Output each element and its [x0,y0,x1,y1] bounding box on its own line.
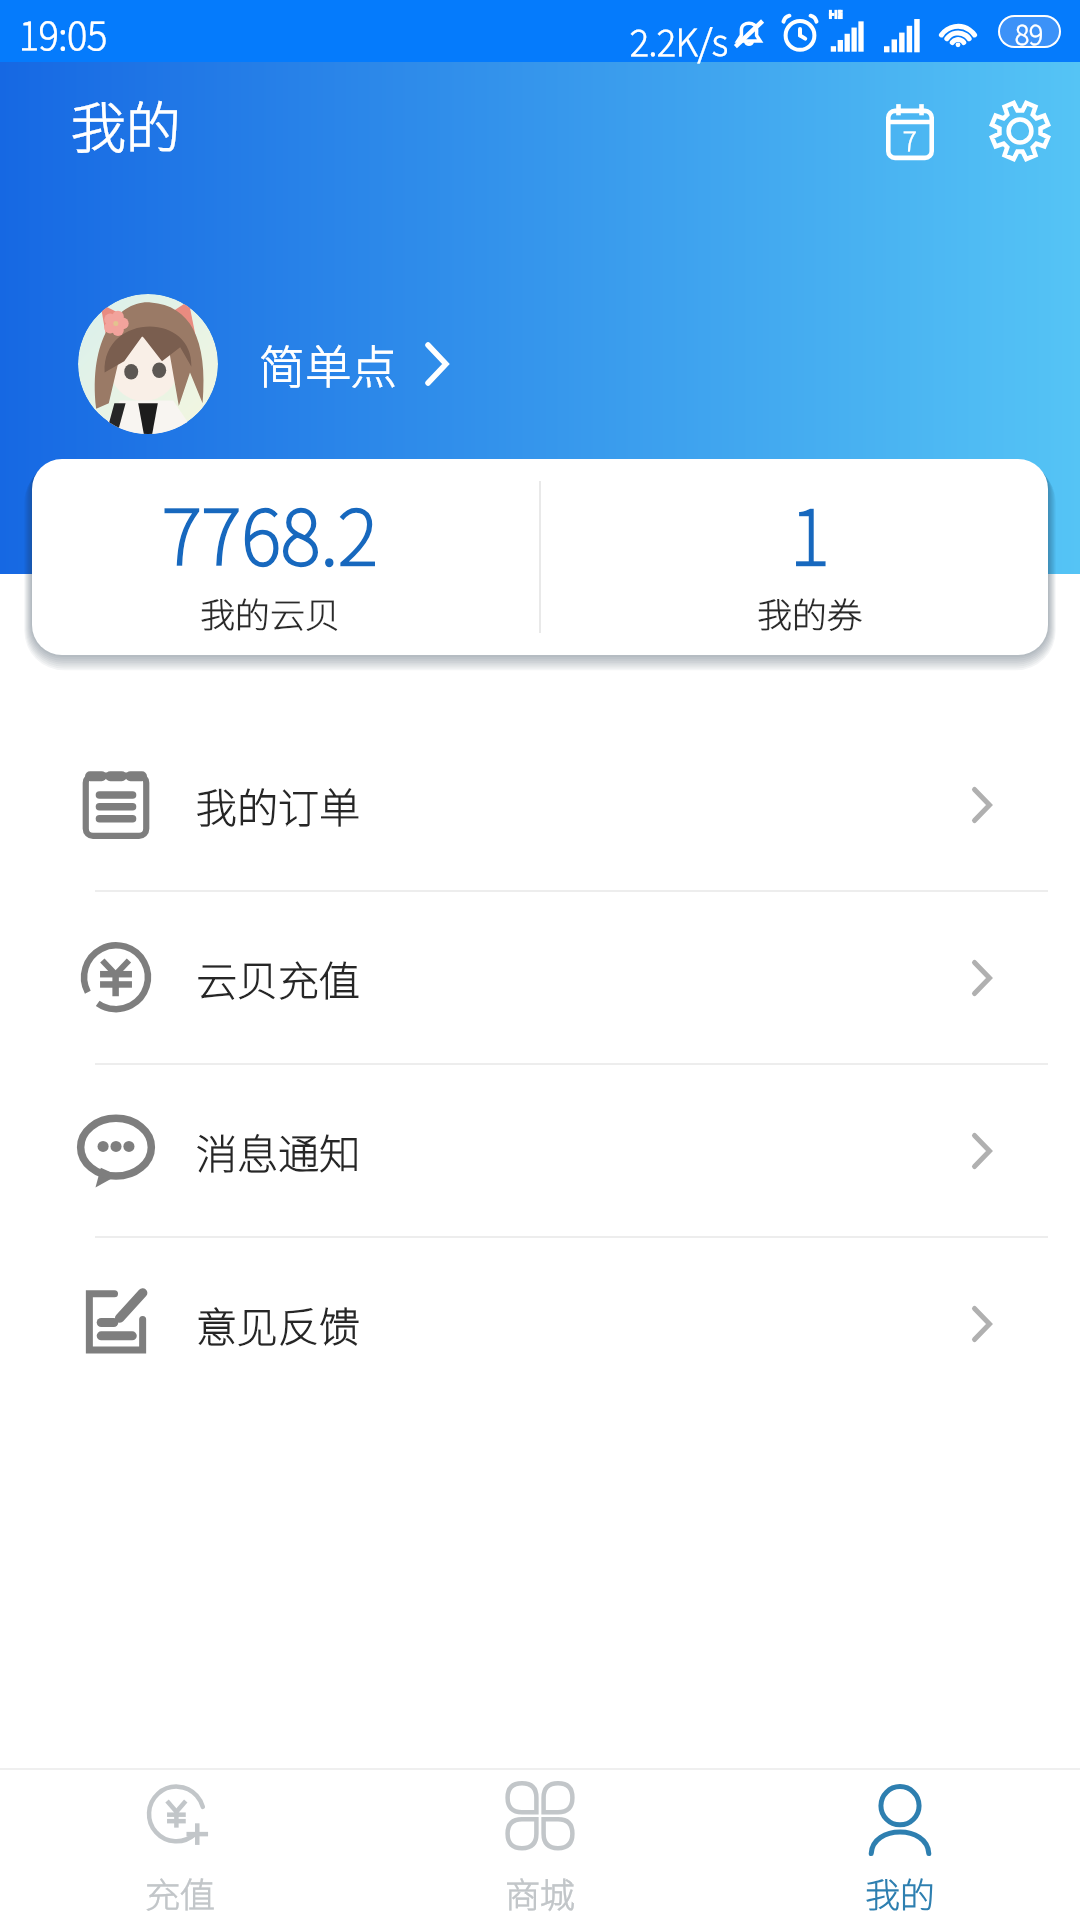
button[interactable]: 消息通知 [0,1065,1080,1236]
button[interactable]: 云贝充值 [0,892,1080,1063]
staticText: 7768.2 [162,477,378,587]
button[interactable]: Calendar [855,76,965,186]
staticText: 89 [1015,15,1044,47]
button[interactable]: 我的订单 [0,719,1080,890]
staticText: 我的 [71,84,182,164]
staticText: 消息通知 [196,1121,360,1180]
button[interactable]: 意见反馈 [0,1238,1080,1409]
button[interactable]: 我的 [720,1770,1080,1920]
button[interactable]: 简单点 [78,294,449,434]
button[interactable]: 商城 [360,1770,720,1920]
staticText: 意见反馈 [196,1294,360,1353]
staticText: 19:05 [19,6,107,61]
button[interactable]: 充值 [0,1770,360,1920]
button[interactable]: Settings [965,76,1075,186]
staticText: 我的 [865,1867,936,1918]
button[interactable]: 7768.2 [32,459,540,655]
staticText: 2.2K/s [630,14,728,66]
staticText: 我的券 [757,587,863,638]
staticText: 我的订单 [196,775,360,834]
staticText: 充值 [145,1867,216,1918]
staticText: 我的云贝 [200,587,341,638]
staticText: 1 [790,477,830,587]
button[interactable]: 1 [540,459,1048,655]
staticText: 云贝充值 [196,948,360,1007]
staticText: 简单点 [259,331,397,398]
staticText: 7 [903,121,917,159]
staticText: 商城 [505,1867,576,1918]
